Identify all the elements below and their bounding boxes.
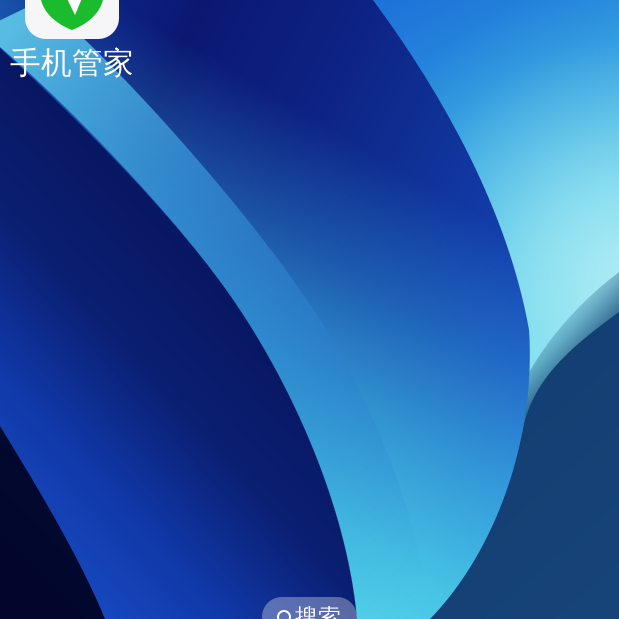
button[interactable]: 手机管家 — [7, 0, 137, 77]
button[interactable]: 搜索 — [262, 597, 357, 619]
staticText: 手机管家 — [10, 44, 134, 82]
staticText: 搜索 — [295, 603, 341, 619]
